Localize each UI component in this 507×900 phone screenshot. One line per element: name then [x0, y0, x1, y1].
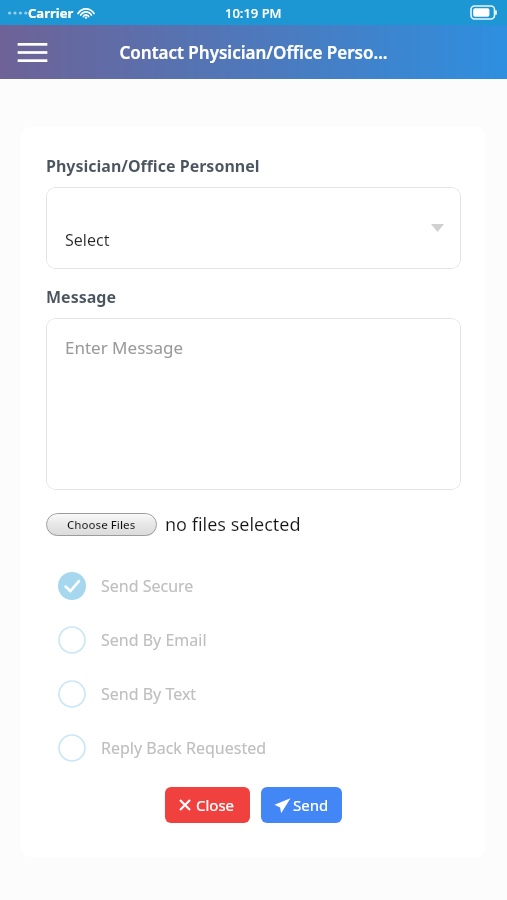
button[interactable]: Open navigation menu: [10, 30, 54, 74]
staticText: Carrier: [28, 4, 74, 22]
staticText: 10:19 PM: [225, 4, 282, 22]
button[interactable]: Select: [46, 187, 461, 269]
button[interactable]: Reply Back Requested: [46, 721, 461, 775]
staticText: Send: [293, 795, 329, 815]
button[interactable]: Enter Message: [46, 318, 461, 490]
button[interactable]: Send By Email: [46, 613, 461, 667]
staticText: Physician/Office Personnel: [46, 155, 260, 177]
staticText: Select: [65, 229, 110, 251]
button[interactable]: Close: [165, 787, 250, 823]
button[interactable]: Choose Files: [46, 513, 157, 536]
staticText: Close: [196, 795, 235, 815]
button[interactable]: Send By Text: [46, 667, 461, 721]
staticText: no files selected: [165, 512, 301, 537]
staticText: Contact Physician/Office Perso...: [119, 41, 388, 64]
button[interactable]: Send: [261, 787, 342, 823]
button[interactable]: Send Secure: [46, 559, 461, 613]
staticText: Message: [46, 286, 116, 308]
staticText: Send By Email: [101, 629, 207, 651]
staticText: Reply Back Requested: [101, 737, 267, 759]
staticText: Choose Files: [67, 517, 136, 533]
staticText: Send Secure: [101, 575, 194, 597]
staticText: Send By Text: [101, 683, 197, 705]
staticText: Enter Message: [65, 336, 183, 359]
